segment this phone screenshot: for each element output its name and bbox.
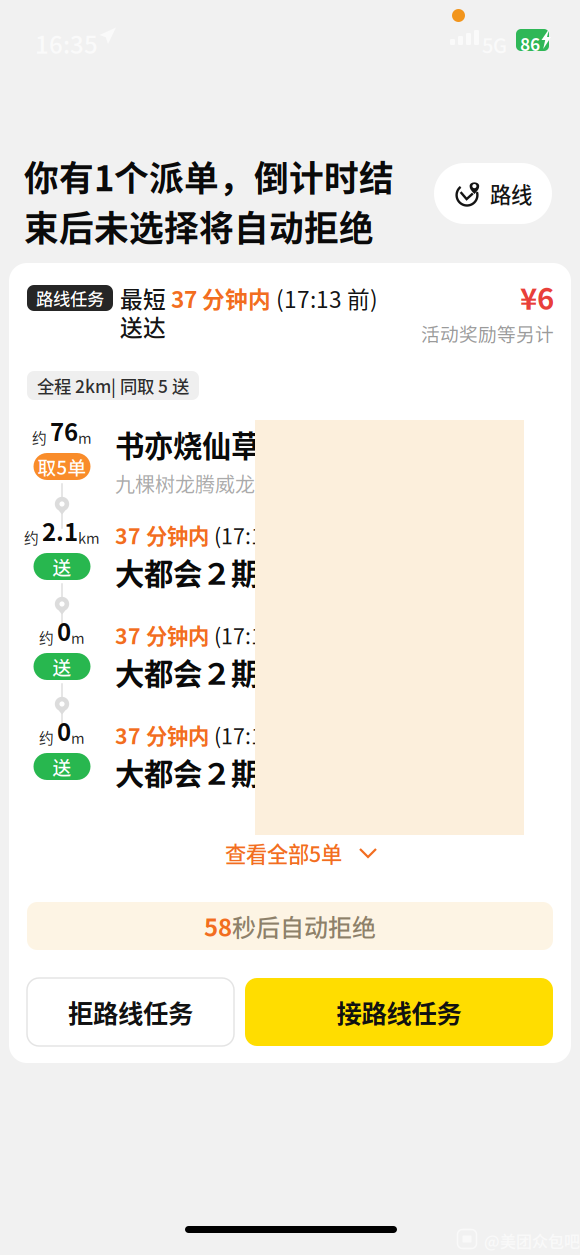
staticText: 查看全部5单 <box>225 838 342 868</box>
staticText: 送 <box>52 653 71 680</box>
staticText: 束后未选择将自动拒绝 <box>24 201 374 251</box>
staticText: 最短 <box>120 282 171 314</box>
staticText: 86 <box>520 31 540 56</box>
staticText: 全程 2km| 同取 5 送 <box>37 373 189 398</box>
staticText: 取5单 <box>37 453 86 480</box>
button[interactable]: 接路线任务 <box>245 978 553 1046</box>
staticText: (17:1 <box>209 520 263 550</box>
staticText: 16:35 <box>35 26 98 61</box>
staticText: m <box>71 627 85 648</box>
staticText: 秒后自动拒绝 <box>232 909 376 943</box>
staticText: km <box>78 527 100 548</box>
staticText: 大都会２期 <box>115 551 260 593</box>
staticText: (17:13 前) <box>271 282 378 314</box>
staticText: 你有1个派单，倒计时结 <box>24 151 394 201</box>
staticText: 九棵树龙腾威龙 <box>115 469 255 498</box>
staticText: 送 <box>52 553 71 580</box>
staticText: 接路线任务 <box>336 994 461 1030</box>
staticText: 约 <box>32 427 50 448</box>
staticText: 活动奖励等另计 <box>421 319 554 346</box>
staticText: 拒路线任务 <box>68 994 193 1030</box>
button[interactable]: 路线 <box>434 163 552 224</box>
staticText: 书亦烧仙草 <box>115 423 260 465</box>
staticText: 约 <box>39 627 57 648</box>
staticText: 2.1 <box>42 513 78 548</box>
staticText: 约 <box>39 727 57 748</box>
staticText: 路线任务 <box>36 285 104 311</box>
staticText: 76 <box>50 413 78 448</box>
staticText: 37 分钟内 <box>171 282 271 314</box>
staticText: (17:1 <box>209 620 263 650</box>
staticText: 大都会２期 <box>115 651 260 693</box>
button[interactable]: 查看全部5单 <box>225 835 395 871</box>
staticText: m <box>71 727 85 748</box>
staticText: m <box>78 427 92 448</box>
staticText: ¥6 <box>520 276 554 318</box>
staticText: 大都会２期 <box>115 751 260 793</box>
staticText: 37 分钟内 <box>115 520 209 550</box>
staticText: 37 分钟内 <box>115 620 209 650</box>
staticText: 送达 <box>120 310 166 343</box>
button[interactable]: 拒路线任务 <box>27 978 234 1046</box>
staticText: 送 <box>52 753 71 780</box>
staticText: 约 <box>24 527 42 548</box>
staticText: 0 <box>57 613 71 648</box>
staticText: (17:1 <box>209 720 263 750</box>
staticText: 路线 <box>490 178 532 209</box>
staticText: 5G <box>482 30 507 59</box>
staticText: 37 分钟内 <box>115 720 209 750</box>
staticText: 58 <box>204 909 232 943</box>
staticText: 0 <box>57 713 71 748</box>
